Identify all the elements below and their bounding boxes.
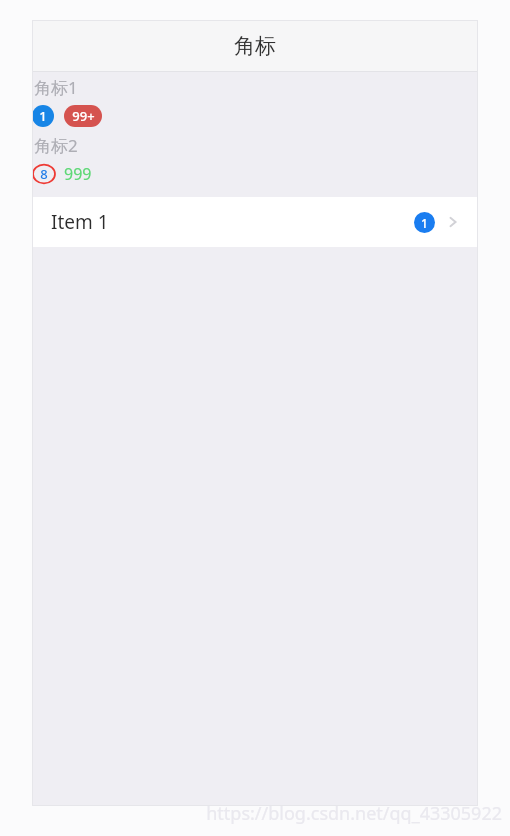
button[interactable]: 99+ bbox=[64, 105, 102, 127]
staticText: 999 bbox=[64, 163, 92, 185]
staticText: 角标1 bbox=[34, 76, 78, 99]
other: Open Item 1 bbox=[445, 214, 461, 230]
staticText: 1 bbox=[421, 215, 428, 231]
staticText: 99+ bbox=[72, 107, 95, 125]
staticText: 角标 bbox=[234, 33, 276, 59]
staticText: 8 bbox=[40, 165, 48, 183]
staticText: Item 1 bbox=[51, 209, 414, 235]
button[interactable]: Item 1 bbox=[32, 197, 478, 247]
staticText: 角标2 bbox=[34, 134, 78, 157]
staticText: https://blog.csdn.net/qq_43305922 bbox=[206, 801, 502, 826]
button[interactable]: 1 bbox=[32, 105, 54, 127]
button[interactable]: 8 bbox=[33, 163, 55, 185]
staticText: 1 bbox=[39, 107, 47, 125]
